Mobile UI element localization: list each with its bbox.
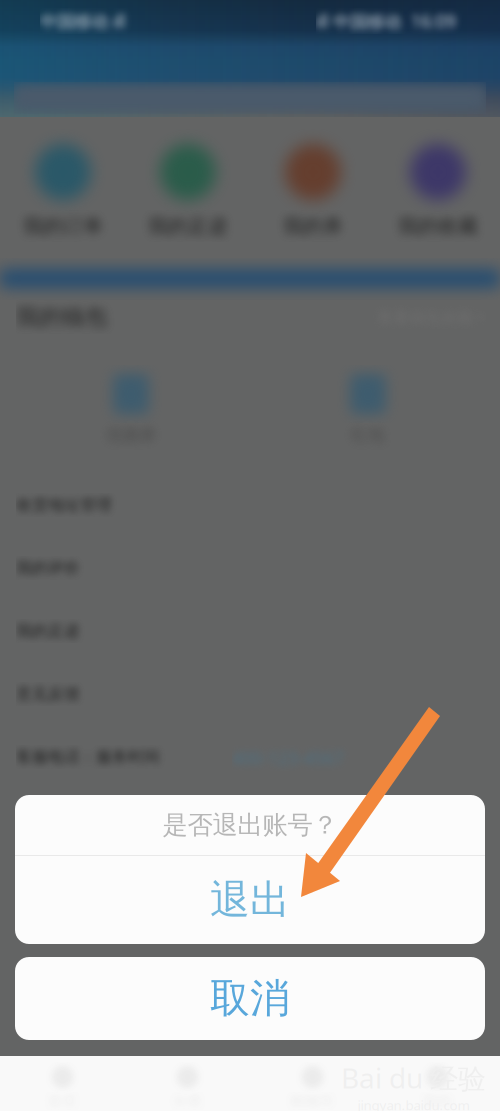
staticText: 中国移动 ıll	[40, 95, 125, 118]
staticText: ıll 中国移动 16:09	[316, 95, 456, 118]
button[interactable]: 退出	[15, 856, 485, 944]
staticText: 查看钱包余额 >	[377, 390, 486, 412]
staticText: Bai du 经验	[341, 1059, 486, 1096]
staticText: 取消	[210, 974, 290, 1023]
button[interactable]: 我的	[375, 1056, 500, 1111]
staticText: 是否退出账号？	[162, 809, 337, 840]
button[interactable]: 取消	[15, 957, 485, 1040]
staticText: 退出	[210, 875, 290, 924]
staticText: 400-123-4567	[232, 832, 344, 855]
staticText: 我的订单	[23, 306, 103, 330]
